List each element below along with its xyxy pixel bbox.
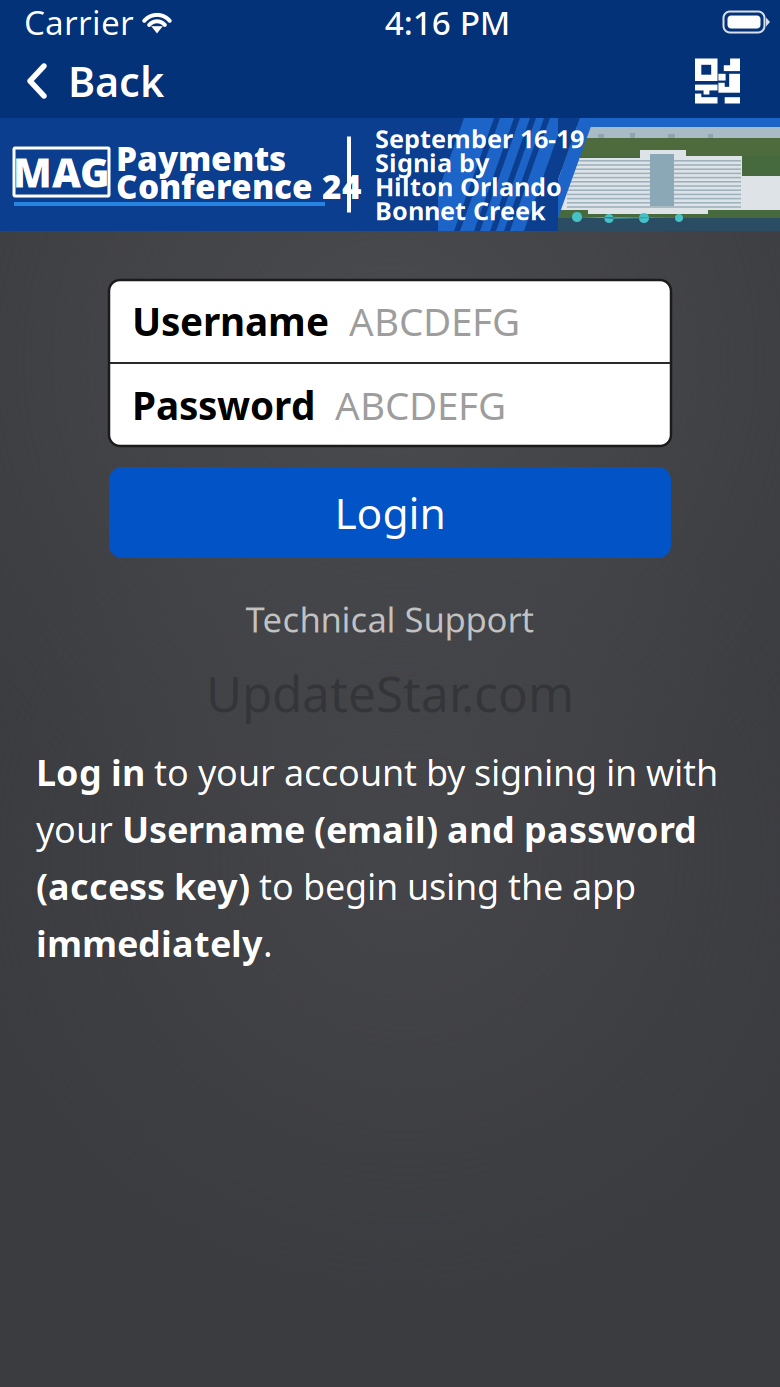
button[interactable]: Scan QR code xyxy=(673,44,775,117)
staticText: Back xyxy=(68,54,164,108)
staticText: immediately. xyxy=(36,919,273,967)
staticText: ABCDEFG xyxy=(349,295,520,347)
staticText: (access key) to begin using the app xyxy=(36,862,636,910)
staticText: September 16-19 xyxy=(375,122,584,155)
button[interactable]: Back xyxy=(5,42,182,120)
staticText: 4:16 PM xyxy=(385,0,511,44)
staticText: Password xyxy=(132,379,315,431)
button[interactable]: Login xyxy=(109,467,671,558)
staticText: Technical Support xyxy=(245,596,534,642)
staticText: ABCDEFG xyxy=(335,379,506,431)
staticText: Login xyxy=(334,484,445,541)
staticText: Carrier xyxy=(24,0,134,44)
staticText: MAG xyxy=(13,145,110,198)
staticText: Bonnet Creek xyxy=(375,194,546,227)
staticText: your Username (email) and password xyxy=(36,805,697,853)
button[interactable]: Technical Support xyxy=(235,590,544,648)
staticText: Payments xyxy=(116,136,286,180)
staticText: Log in to your account by signing in wit… xyxy=(36,748,718,796)
staticText: Signia by xyxy=(375,146,489,179)
staticText: Hilton Orlando xyxy=(375,170,562,203)
staticText: UpdateStar.com xyxy=(206,660,574,725)
staticText: Username xyxy=(132,295,329,347)
staticText: Conference 24 xyxy=(116,164,362,208)
